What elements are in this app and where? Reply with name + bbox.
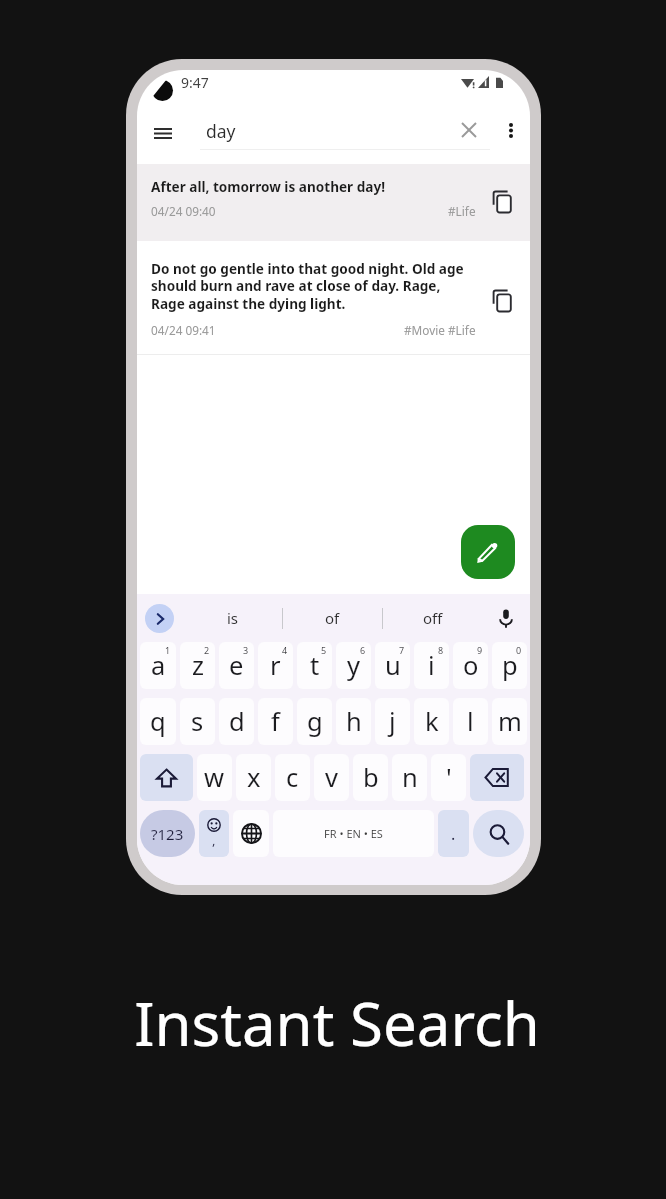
staticText: 2 <box>204 644 210 656</box>
staticText: 9:47 <box>181 73 209 92</box>
staticText: f <box>271 704 280 739</box>
staticText: a <box>151 648 166 683</box>
staticText: l <box>467 704 474 739</box>
button[interactable]: Do not go gentle into that good night. O… <box>137 241 530 354</box>
button[interactable]: Backspace <box>470 754 524 801</box>
staticText: After all, tomorrow is another day! <box>151 177 469 196</box>
staticText: o <box>463 648 479 683</box>
staticText: c <box>286 760 299 795</box>
button[interactable]: t <box>297 642 332 689</box>
staticText: 9 <box>477 644 483 656</box>
staticText: h <box>346 704 362 739</box>
button[interactable]: o <box>453 642 488 689</box>
button[interactable]: z <box>180 642 215 689</box>
button[interactable]: Search <box>473 810 524 857</box>
button[interactable]: Menu <box>140 111 185 156</box>
button[interactable]: Clear <box>447 108 491 152</box>
staticText: #Movie #Life <box>404 322 476 338</box>
staticText: 0 <box>516 644 522 656</box>
button[interactable]: is <box>184 594 282 642</box>
staticText: k <box>425 704 439 739</box>
staticText: q <box>150 704 166 739</box>
button[interactable]: p <box>492 642 527 689</box>
button[interactable]: j <box>375 698 410 745</box>
button[interactable]: Change language <box>233 810 269 857</box>
button[interactable]: k <box>414 698 449 745</box>
staticText: 04/24 09:40 <box>151 203 216 219</box>
staticText: b <box>363 760 379 795</box>
staticText: 04/24 09:41 <box>151 322 216 338</box>
button[interactable]: of <box>283 594 382 642</box>
button[interactable]: FR • EN • ES <box>273 810 434 857</box>
staticText: u <box>385 648 401 683</box>
staticText: y <box>347 648 361 683</box>
staticText: d <box>229 704 245 739</box>
staticText: 6 <box>360 644 366 656</box>
button[interactable]: r <box>258 642 293 689</box>
staticText: v <box>325 760 338 795</box>
button[interactable]: c <box>275 754 310 801</box>
staticText: #Life <box>448 203 476 219</box>
button[interactable]: i <box>414 642 449 689</box>
button[interactable]: e <box>219 642 254 689</box>
button[interactable]: ?123 <box>140 810 195 857</box>
button[interactable]: y <box>336 642 371 689</box>
button[interactable]: s <box>180 698 215 745</box>
button[interactable]: q <box>140 698 176 745</box>
button[interactable]: h <box>336 698 371 745</box>
staticText: is <box>227 608 239 628</box>
staticText: g <box>307 704 323 739</box>
button[interactable]: b <box>353 754 388 801</box>
button[interactable]: Expand suggestions <box>145 604 174 633</box>
button[interactable]: Emoji <box>199 810 229 857</box>
staticText: of <box>325 608 340 628</box>
button[interactable]: Copy <box>484 283 520 319</box>
button[interactable]: Copy <box>484 184 520 220</box>
staticText: , <box>212 831 216 849</box>
staticText: 1 <box>165 644 171 656</box>
staticText: e <box>229 648 244 683</box>
button[interactable]: l <box>453 698 488 745</box>
staticText: m <box>498 704 522 739</box>
button[interactable]: More options <box>489 108 530 152</box>
button[interactable]: a <box>140 642 176 689</box>
staticText: Instant Search <box>134 982 540 1064</box>
button[interactable]: ' <box>431 754 466 801</box>
button[interactable]: m <box>492 698 527 745</box>
button[interactable]: n <box>392 754 427 801</box>
staticText: t <box>310 648 320 683</box>
button[interactable]: u <box>375 642 410 689</box>
button[interactable]: g <box>297 698 332 745</box>
staticText: FR • EN • ES <box>324 826 383 841</box>
staticText: off <box>423 608 443 628</box>
button[interactable]: Voice input <box>482 594 530 642</box>
button[interactable]: x <box>236 754 271 801</box>
staticText: 5 <box>321 644 327 656</box>
staticText: p <box>502 648 518 683</box>
staticText: z <box>192 648 204 683</box>
staticText: 4 <box>282 644 288 656</box>
staticText: j <box>389 704 396 739</box>
staticText: i <box>428 648 435 683</box>
staticText: r <box>270 648 281 683</box>
button[interactable]: d <box>219 698 254 745</box>
staticText: Do not go gentle into that good night. O… <box>151 259 469 313</box>
button[interactable]: Shift <box>140 754 193 801</box>
button[interactable]: After all, tomorrow is another day! <box>137 164 530 241</box>
staticText: n <box>402 760 418 795</box>
staticText: ?123 <box>151 824 184 844</box>
staticText: w <box>204 760 225 795</box>
button[interactable]: . <box>438 810 469 857</box>
button[interactable]: w <box>197 754 232 801</box>
staticText: s <box>191 704 204 739</box>
staticText: 3 <box>243 644 249 656</box>
button[interactable]: off <box>383 594 482 642</box>
button[interactable]: v <box>314 754 349 801</box>
button[interactable]: New note <box>461 525 515 579</box>
staticText: x <box>247 760 261 795</box>
staticText: day <box>206 119 236 143</box>
staticText: ' <box>446 760 452 795</box>
staticText: 7 <box>399 644 405 656</box>
staticText: . <box>451 823 456 845</box>
button[interactable]: f <box>258 698 293 745</box>
